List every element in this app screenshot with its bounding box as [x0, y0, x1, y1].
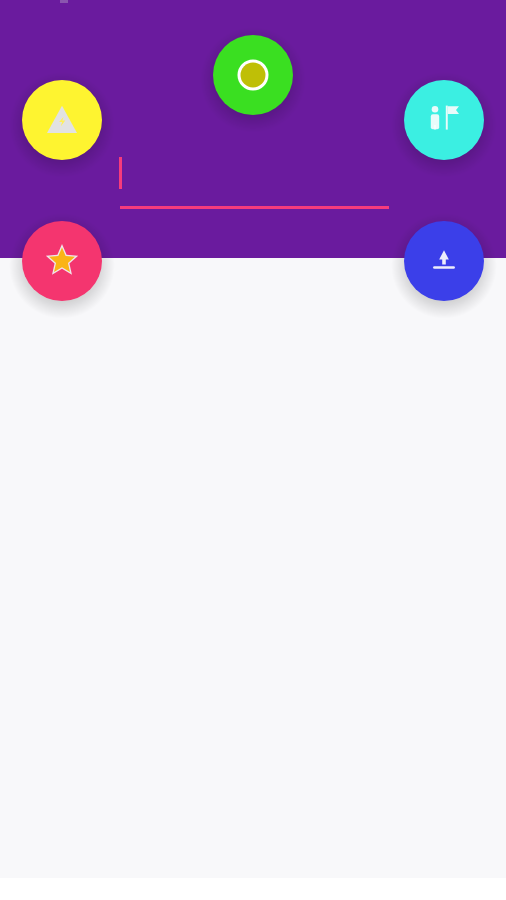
button[interactable]: Record — [213, 35, 293, 115]
button[interactable]: Favorite — [22, 221, 102, 301]
button[interactable]: Events — [404, 80, 484, 160]
button[interactable]: Upload — [404, 221, 484, 301]
button[interactable]: Warning — [22, 80, 102, 160]
